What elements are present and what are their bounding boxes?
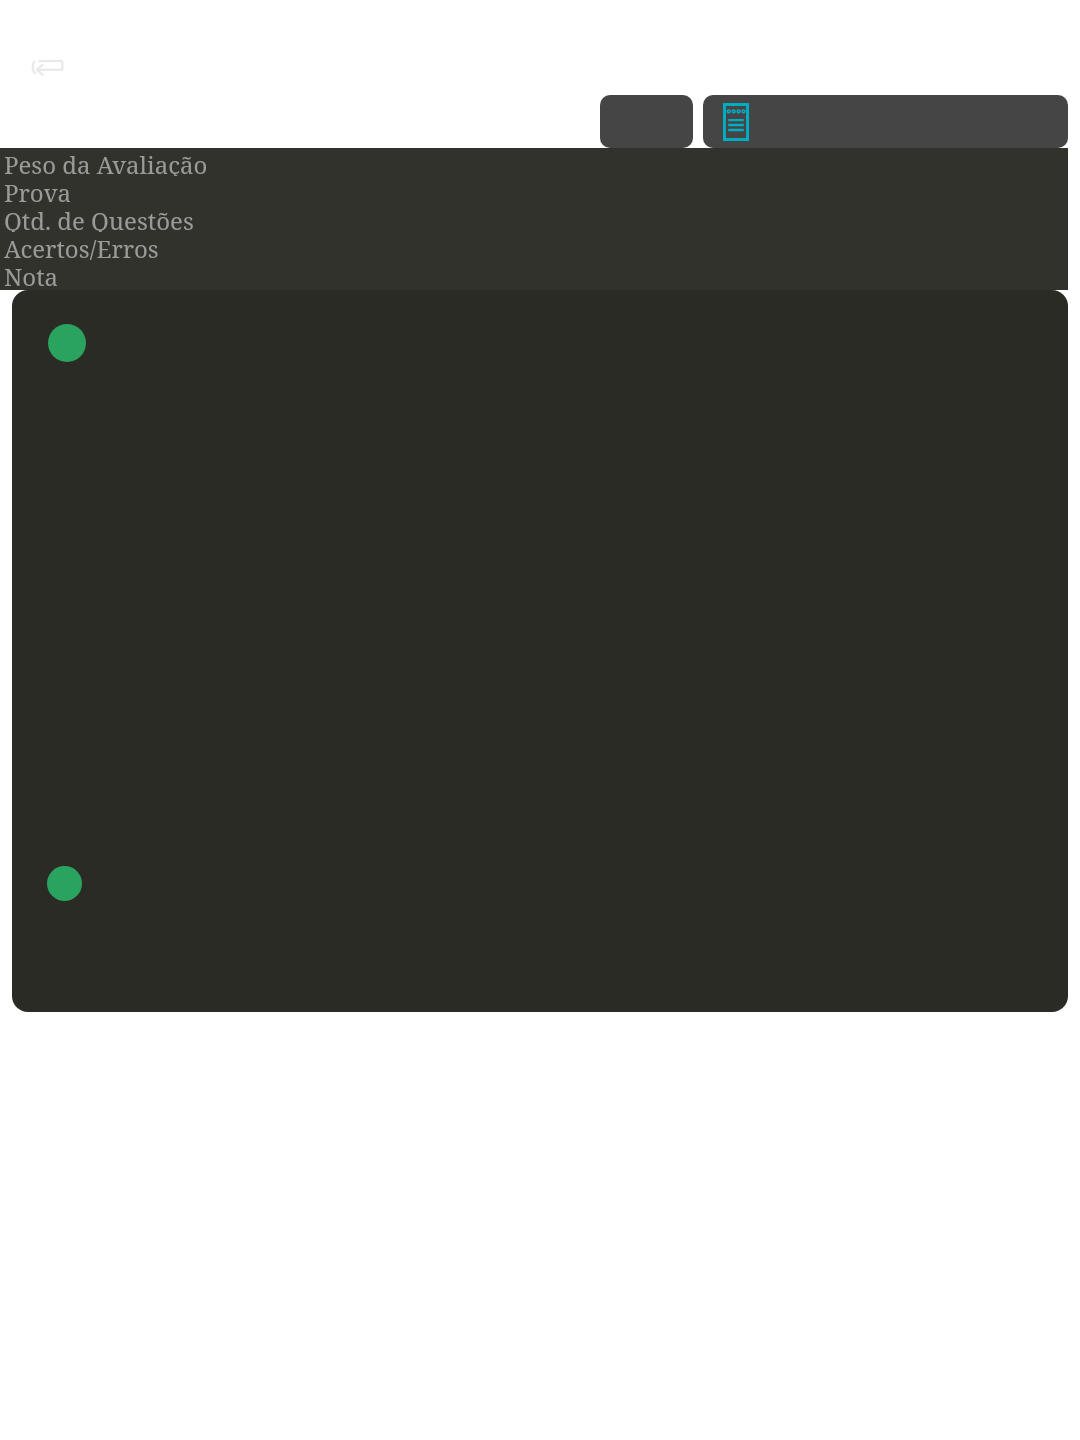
- staticText: Peso da Avaliação: [4, 148, 208, 176]
- button[interactable]: Notas: [703, 95, 1068, 148]
- button[interactable]: Status aprovado: [12, 290, 1068, 1012]
- staticText: Prova: [4, 176, 72, 204]
- button[interactable]: Filtro: [600, 95, 693, 148]
- staticText: Acertos/Erros: [4, 232, 159, 260]
- button[interactable]: Voltar: [24, 46, 72, 90]
- staticText: Qtd. de Questões: [4, 204, 194, 232]
- other: Status aprovado: [48, 324, 86, 362]
- other: Status aprovado: [47, 866, 82, 901]
- other: Notas: [723, 103, 749, 141]
- staticText: Nota: [4, 260, 59, 288]
